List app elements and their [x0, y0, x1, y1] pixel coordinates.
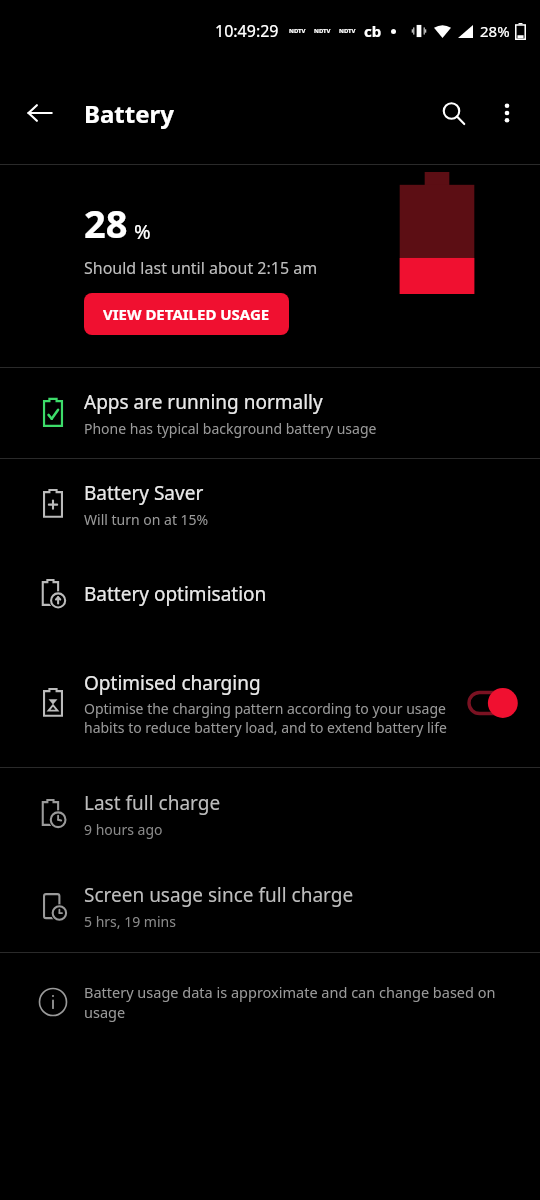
staticText: Battery usage data is approximate and ca…: [84, 982, 500, 1022]
staticText: VIEW DETAILED USAGE: [103, 304, 270, 324]
staticText: 9 hours ago: [84, 820, 163, 839]
staticText: Battery optimisation: [84, 581, 267, 607]
staticText: %: [134, 218, 151, 245]
button[interactable]: Last full charge: [0, 768, 540, 860]
button[interactable]: Screen usage since full charge: [0, 860, 540, 952]
staticText: cb: [364, 21, 382, 41]
staticText: 28: [84, 197, 128, 249]
staticText: Last full charge: [84, 790, 221, 816]
staticText: NDTV: [289, 27, 306, 35]
staticText: Optimised charging: [84, 670, 261, 696]
staticText: Screen usage since full charge: [84, 882, 354, 908]
staticText: NDTV: [339, 27, 356, 35]
button[interactable]: Optimised charging toggle: [464, 681, 522, 725]
button[interactable]: Battery optimisation: [0, 549, 540, 639]
staticText: 5 hrs, 19 mins: [84, 912, 176, 931]
button[interactable]: VIEW DETAILED USAGE: [84, 293, 289, 335]
button[interactable]: Search: [426, 86, 480, 140]
staticText: NDTV: [314, 27, 331, 35]
staticText: Optimise the charging pattern according …: [84, 699, 454, 737]
staticText: 10:49:29: [215, 20, 279, 42]
staticText: 28%: [480, 21, 510, 41]
button[interactable]: Optimised charging: [0, 639, 540, 767]
staticText: Battery Saver: [84, 480, 204, 506]
staticText: Will turn on at 15%: [84, 510, 209, 529]
button[interactable]: Apps are running normally: [0, 368, 540, 458]
button[interactable]: More options: [480, 86, 534, 140]
staticText: Should last until about 2:15 am: [84, 257, 318, 279]
staticText: Apps are running normally: [84, 389, 323, 415]
button[interactable]: Battery Saver: [0, 459, 540, 549]
button[interactable]: Back: [12, 85, 68, 141]
staticText: Phone has typical background battery usa…: [84, 419, 377, 438]
staticText: Battery: [84, 97, 174, 130]
